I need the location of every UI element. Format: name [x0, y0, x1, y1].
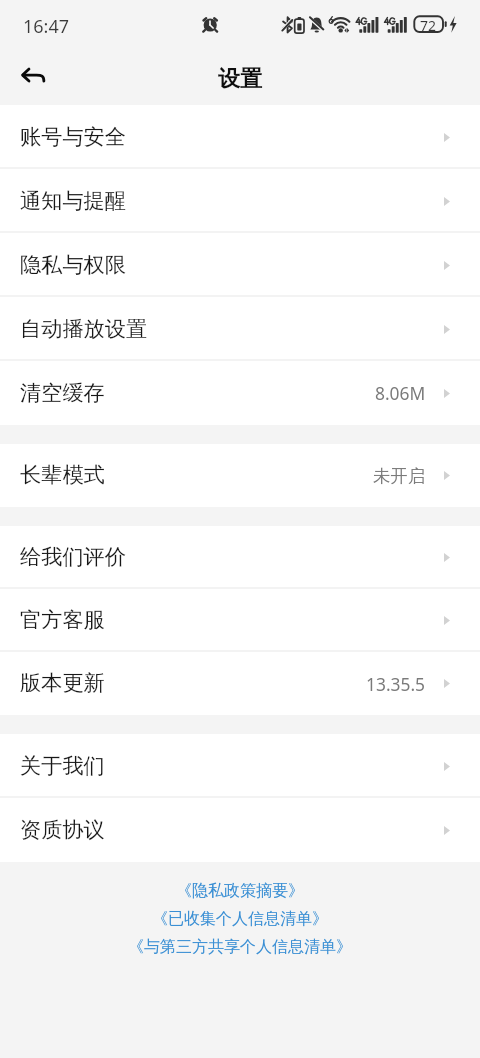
staticText: 隐私与权限: [20, 252, 126, 279]
staticText: 13.35.5: [366, 672, 426, 696]
button[interactable]: 自动播放设置: [0, 297, 480, 361]
staticText: 《隐私政策摘要》: [176, 881, 304, 901]
staticText: 《与第三方共享个人信息清单》: [128, 937, 352, 957]
button[interactable]: 关于我们: [0, 734, 480, 798]
button[interactable]: 资质协议: [0, 798, 480, 862]
staticText: 关于我们: [20, 753, 105, 780]
button[interactable]: 隐私与权限: [0, 233, 480, 297]
button[interactable]: 清空缓存: [0, 361, 480, 425]
staticText: 官方客服: [20, 607, 105, 634]
staticText: 账号与安全: [20, 124, 126, 151]
staticText: 设置: [218, 65, 262, 93]
staticText: 通知与提醒: [20, 188, 126, 215]
staticText: 版本更新: [20, 670, 105, 697]
staticText: 给我们评价: [20, 544, 126, 571]
button[interactable]: 通知与提醒: [0, 169, 480, 233]
staticText: 8.06M: [375, 381, 426, 405]
staticText: 72: [420, 16, 437, 35]
staticText: 未开启: [373, 465, 426, 487]
button[interactable]: 版本更新: [0, 652, 480, 715]
button[interactable]: 《隐私政策摘要》: [176, 877, 304, 905]
button[interactable]: 给我们评价: [0, 526, 480, 589]
staticText: 清空缓存: [20, 380, 105, 407]
button[interactable]: 《与第三方共享个人信息清单》: [128, 933, 352, 961]
staticText: 长辈模式: [20, 462, 105, 489]
button[interactable]: Back: [2, 49, 54, 101]
staticText: 资质协议: [20, 817, 105, 844]
staticText: 自动播放设置: [20, 316, 148, 343]
staticText: 《已收集个人信息清单》: [152, 909, 328, 929]
button[interactable]: 账号与安全: [0, 105, 480, 169]
button[interactable]: 长辈模式: [0, 444, 480, 507]
button[interactable]: 官方客服: [0, 589, 480, 652]
button[interactable]: 《已收集个人信息清单》: [152, 905, 328, 933]
staticText: 16:47: [23, 14, 70, 39]
